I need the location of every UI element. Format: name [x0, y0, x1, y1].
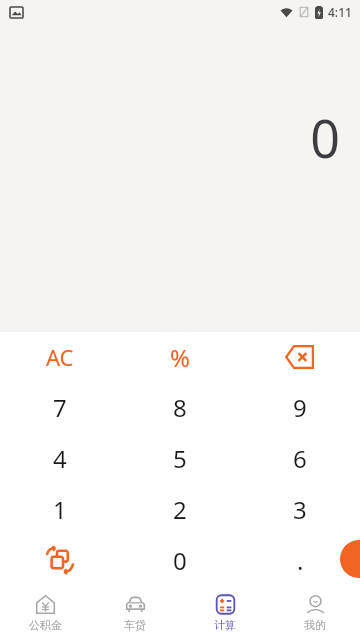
- staticText: 4:11: [328, 4, 352, 20]
- button[interactable]: AC: [0, 332, 120, 382]
- staticText: 1: [53, 493, 67, 526]
- staticText: .: [297, 544, 304, 577]
- button[interactable]: 公积金: [0, 586, 90, 640]
- staticText: 6: [293, 442, 307, 475]
- button[interactable]: Swap: [0, 535, 120, 586]
- button[interactable]: .: [240, 535, 360, 586]
- button[interactable]: 计算: [180, 586, 270, 640]
- staticText: 9: [293, 391, 307, 424]
- button[interactable]: 车贷: [90, 586, 180, 640]
- button[interactable]: Backspace: [240, 332, 360, 382]
- button[interactable]: 9: [240, 382, 360, 433]
- button[interactable]: %: [120, 332, 240, 382]
- staticText: 公积金: [29, 618, 62, 632]
- staticText: 0: [173, 544, 187, 577]
- button[interactable]: 5: [120, 433, 240, 484]
- staticText: 4: [53, 442, 67, 475]
- staticText: 计算: [214, 618, 236, 632]
- staticText: %: [170, 341, 190, 374]
- button[interactable]: 6: [240, 433, 360, 484]
- staticText: 8: [173, 391, 187, 424]
- staticText: 我的: [304, 618, 326, 632]
- button[interactable]: Equals: [340, 540, 360, 578]
- staticText: 0: [310, 102, 340, 173]
- button[interactable]: 2: [120, 484, 240, 535]
- button[interactable]: 1: [0, 484, 120, 535]
- staticText: 2: [173, 493, 187, 526]
- button[interactable]: 0: [120, 535, 240, 586]
- staticText: 7: [53, 391, 67, 424]
- staticText: 3: [293, 493, 307, 526]
- staticText: 车贷: [124, 618, 146, 632]
- button[interactable]: 7: [0, 382, 120, 433]
- staticText: 5: [173, 442, 187, 475]
- button[interactable]: 8: [120, 382, 240, 433]
- button[interactable]: 我的: [270, 586, 360, 640]
- button[interactable]: 4: [0, 433, 120, 484]
- button[interactable]: 3: [240, 484, 360, 535]
- staticText: AC: [46, 342, 74, 372]
